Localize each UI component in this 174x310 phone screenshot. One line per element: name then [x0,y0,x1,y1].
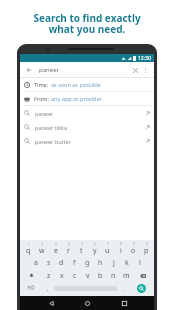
staticText: y [93,246,97,255]
button[interactable]: Clear [130,65,140,75]
staticText: q [26,246,31,255]
staticText: From: [34,95,49,102]
staticText: o [131,246,136,255]
staticText: x [60,271,64,281]
staticText: r [67,246,70,255]
button[interactable]: d [55,257,68,268]
button[interactable]: j [107,257,120,268]
button[interactable]: Recents [118,297,130,309]
staticText: j [113,258,115,268]
staticText: ?!© [27,285,35,292]
staticText: s [47,258,51,268]
button[interactable]: m [120,270,133,281]
staticText: l [139,258,141,268]
button[interactable]: paneer tikka [20,120,154,134]
staticText: u [105,246,110,255]
staticText: any app or provider [51,95,102,102]
button[interactable]: f [68,257,81,268]
staticText: k [125,258,129,268]
staticText: 2 [41,242,43,246]
button[interactable]: Shift [21,270,42,281]
staticText: 7 [107,242,109,246]
button[interactable]: paneer [20,106,154,120]
staticText: z [47,271,51,281]
button[interactable]: n [107,270,120,281]
staticText: paneer [35,110,145,117]
button[interactable]: 8 [114,242,127,255]
staticText: g [85,258,90,268]
button[interactable]: Back [24,65,34,75]
staticText: 12:30 [138,55,151,62]
button[interactable]: k [120,257,133,268]
staticText: w [39,246,45,255]
button[interactable]: b [94,270,107,281]
staticText: f [73,258,76,268]
staticText: b [98,271,103,281]
button[interactable]: x [55,270,68,281]
staticText: 5 [81,242,83,246]
button[interactable]: Back [45,297,57,309]
staticText: . [123,285,125,293]
staticText: 6 [94,242,96,246]
button[interactable]: 4 [62,242,75,255]
button[interactable]: 2 [35,242,49,255]
staticText: Time: [34,81,49,88]
button[interactable]: ?!© [21,283,41,294]
button[interactable]: v [81,270,94,281]
button[interactable]: , [41,283,54,294]
staticText: a [34,258,38,268]
staticText: h [98,258,103,268]
staticText: d [59,258,64,268]
staticText: 8 [120,242,122,246]
staticText: v [86,271,90,281]
button[interactable]: 3 [49,242,62,255]
staticText: as soon as possible [51,81,101,88]
button[interactable]: Time: [20,78,154,91]
staticText: Search to find exactly what you need. [33,11,141,36]
staticText: 1 [28,242,30,246]
staticText: paneer butter [35,138,145,145]
button[interactable]: From: [20,92,154,105]
staticText: paneer [39,66,130,74]
button[interactable]: g [81,257,94,268]
staticText: 4 [68,242,70,246]
staticText: 9 [133,242,135,246]
button[interactable]: h [94,257,107,268]
staticText: p [144,246,149,255]
button[interactable]: . [117,283,130,294]
button[interactable]: l [133,257,146,268]
button[interactable]: Search [137,284,146,293]
button[interactable]: 9 [127,242,140,255]
staticText: c [73,271,77,281]
staticText: e [54,246,58,255]
button[interactable]: a [29,257,42,268]
button[interactable]: 5 [75,242,88,255]
button[interactable]: Backspace [133,270,153,281]
button[interactable]: s [42,257,55,268]
staticText: 0 [146,242,148,246]
button[interactable]: Home [81,297,93,309]
button[interactable]: z [42,270,55,281]
staticText: m [123,271,130,281]
button[interactable]: More options [140,65,150,75]
staticText: t [80,246,83,255]
button[interactable]: 1 [21,242,35,255]
button[interactable]: paneer butter [20,134,154,148]
staticText: n [111,271,116,281]
staticText: i [120,246,122,255]
staticText: , [47,285,49,293]
button[interactable]: c [68,270,81,281]
button[interactable]: 7 [101,242,114,255]
button[interactable]: 0 [140,242,153,255]
button[interactable]: 6 [88,242,101,255]
staticText: 3 [55,242,57,246]
staticText: paneer tikka [35,124,145,131]
